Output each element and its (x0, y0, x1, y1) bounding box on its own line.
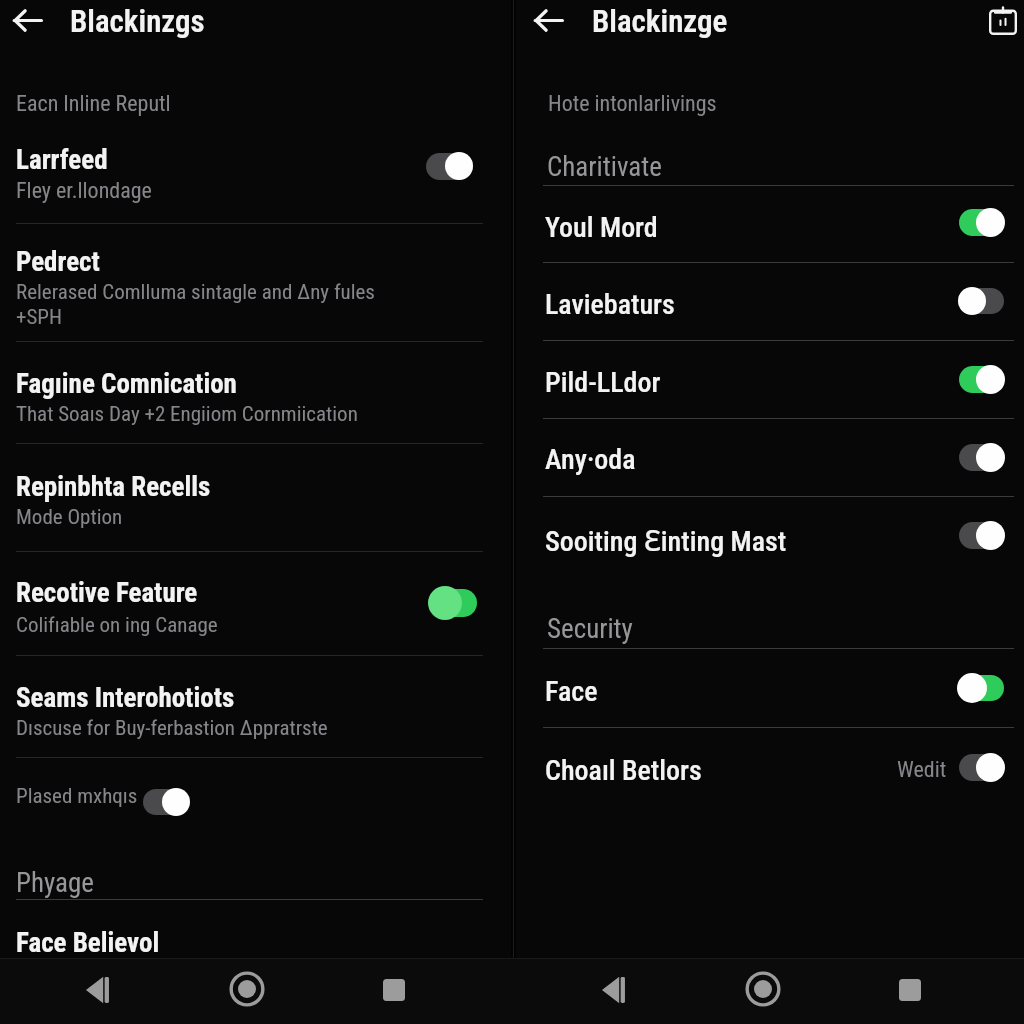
button[interactable]: Toggle (958, 443, 1005, 472)
button[interactable]: Any·oda (516, 419, 1024, 496)
button[interactable]: Face (516, 649, 1024, 727)
button[interactable]: Toggle (142, 788, 190, 816)
staticText: Fley er.llondage (16, 178, 152, 204)
staticText: Mode Option (16, 505, 123, 530)
button[interactable]: Youl Mord (516, 186, 1024, 262)
staticText: Dıscuse for Buy-ferbastion Δppratrste (16, 716, 328, 741)
staticText: Seams Interohotiotѕ (16, 682, 235, 714)
staticText: Wedit (897, 757, 947, 783)
button[interactable]: Home (229, 971, 265, 1007)
staticText: Repinbhta Recells (16, 471, 211, 503)
staticText: Youl Mord (545, 211, 658, 244)
button[interactable]: Toggle (425, 152, 473, 180)
staticText: Phyage (16, 867, 94, 899)
button[interactable]: Ѕooiting Ɛinting Mast (516, 497, 1024, 574)
staticText: Pild-LLdor (545, 366, 661, 399)
button[interactable]: Toggle (958, 521, 1005, 550)
staticText: Any·oda (545, 443, 636, 476)
staticText: Plased mхhqıs (16, 784, 138, 809)
button[interactable]: Larrfeed (0, 126, 511, 224)
button[interactable]: Toggle (428, 586, 480, 620)
button[interactable]: Clipboard (989, 7, 1017, 35)
staticText: Laviebaturs (545, 288, 675, 321)
staticText: Blackinzgs (70, 3, 205, 39)
button[interactable]: Back (534, 6, 563, 35)
button[interactable]: Toggle (957, 673, 1006, 703)
staticText: Blackinzge (592, 3, 728, 39)
button[interactable]: Home (745, 971, 781, 1007)
staticText: Security (547, 613, 633, 645)
staticText: Recotive Feature (16, 577, 198, 609)
button[interactable]: Pild-LLdor (516, 341, 1024, 418)
button[interactable]: Recotive Feature (0, 552, 511, 656)
staticText: Hote intonlarlivings (548, 91, 717, 117)
button[interactable]: Seams Interohotiotѕ (0, 656, 511, 758)
button[interactable]: Repinbhta Recells (0, 444, 511, 552)
staticText: That Soaıs Day +2 Engiiom Cornmiication (16, 402, 358, 427)
button[interactable]: Recents (899, 979, 921, 1001)
button[interactable]: Fagıine Comnication (0, 342, 511, 444)
staticText: Relerased Comlluma sintagle and Δny fule… (16, 280, 375, 305)
staticText: Charitivate (547, 151, 662, 183)
button[interactable]: Plased mхhqıs (0, 758, 511, 834)
staticText: +SРH (16, 305, 62, 330)
staticText: Larrfeed (16, 144, 108, 176)
staticText: Ѕooiting Ɛinting Mast (545, 521, 787, 559)
button[interactable]: Back (594, 972, 630, 1008)
button[interactable]: Recents (383, 979, 405, 1001)
button[interactable]: Toggle (958, 753, 1005, 782)
staticText: Colifıable on ing Canage (16, 613, 218, 638)
button[interactable]: Toggle (958, 365, 1005, 394)
staticText: Fagıine Comnication (16, 368, 237, 400)
button[interactable]: Toggle (958, 208, 1005, 237)
staticText: Choaıl Betlors (545, 754, 702, 787)
staticText: Eacn Inline Reputl (16, 91, 171, 117)
button[interactable]: Laviebaturs (516, 263, 1024, 340)
button[interactable]: Pedrect (0, 224, 511, 342)
staticText: Face (545, 675, 598, 708)
button[interactable]: Face Believol (0, 900, 511, 956)
button[interactable]: Choaıl Betlors (516, 728, 1024, 806)
button[interactable]: Toggle (958, 287, 1005, 315)
staticText: Face Believol (16, 927, 160, 959)
button[interactable]: Back (78, 972, 114, 1008)
button[interactable]: Back (13, 6, 42, 35)
staticText: Pedrect (16, 246, 100, 278)
